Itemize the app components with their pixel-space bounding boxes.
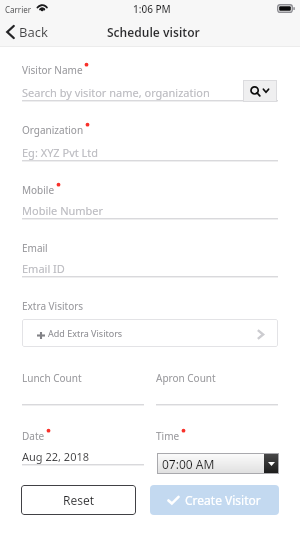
staticText: Mobile Number xyxy=(22,203,104,218)
staticText: Email ID xyxy=(22,261,65,276)
staticText: Eg: XYZ Pvt Ltd xyxy=(22,145,99,160)
staticText: Schedule visitor xyxy=(107,24,200,40)
staticText: Back xyxy=(19,23,48,41)
button[interactable]: 07:00 AM xyxy=(157,453,279,474)
staticText: Organization xyxy=(22,123,84,137)
staticText: Extra Visitors xyxy=(22,299,84,313)
button[interactable]: Back xyxy=(4,21,54,43)
staticText: Mobile xyxy=(22,183,55,197)
staticText: Add Extra Visitors xyxy=(48,327,123,339)
staticText: Visitor Name xyxy=(22,63,83,77)
staticText: Lunch Count xyxy=(22,371,82,385)
staticText: 1:06 PM xyxy=(133,2,171,16)
staticText: 07:00 AM xyxy=(162,456,215,472)
staticText: Date xyxy=(22,429,45,443)
button[interactable]: Create Visitor xyxy=(150,485,279,515)
button[interactable]: Reset xyxy=(21,485,136,515)
staticText: Time xyxy=(156,429,180,443)
staticText: Search by visitor name, organization xyxy=(22,85,210,100)
button[interactable]: Aug 22, 2018 xyxy=(22,449,90,464)
button[interactable]: Add Extra Visitors xyxy=(22,319,278,347)
staticText: Create Visitor xyxy=(185,492,261,508)
button[interactable]: Search xyxy=(243,80,277,102)
staticText: Carrier xyxy=(5,4,32,15)
staticText: Email xyxy=(22,241,48,255)
staticText: Apron Count xyxy=(156,371,216,385)
staticText: Reset xyxy=(63,492,95,508)
